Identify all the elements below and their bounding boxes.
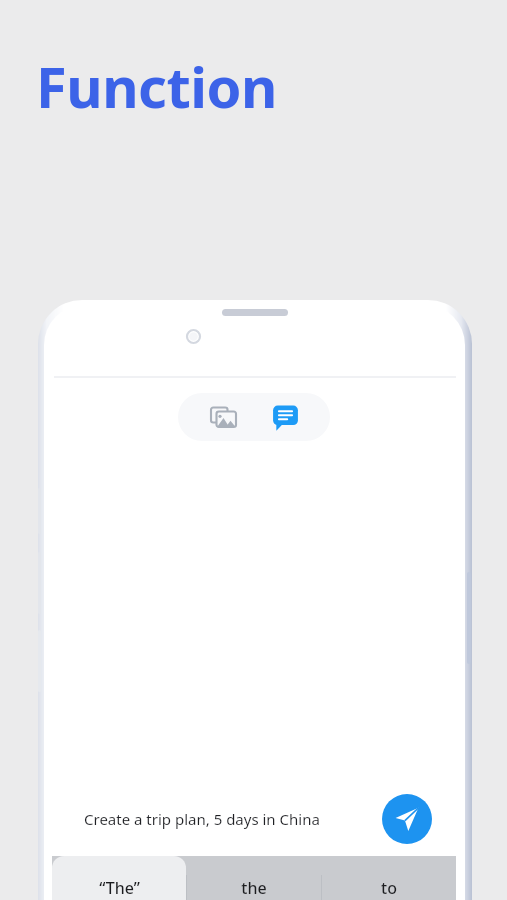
button[interactable]: “The” bbox=[52, 856, 186, 900]
staticText: Function bbox=[36, 48, 277, 124]
button[interactable]: Send bbox=[382, 794, 432, 844]
button[interactable]: the bbox=[186, 856, 321, 900]
button[interactable]: Create a trip plan, 5 days in China bbox=[66, 798, 368, 840]
button[interactable]: Gallery bbox=[203, 397, 243, 437]
staticText: Create a trip plan, 5 days in China bbox=[84, 809, 320, 829]
staticText: “The” bbox=[99, 877, 140, 899]
button[interactable]: to bbox=[321, 856, 456, 900]
button[interactable]: Chat bbox=[265, 397, 305, 437]
staticText: the bbox=[241, 877, 267, 899]
staticText: to bbox=[381, 877, 397, 899]
